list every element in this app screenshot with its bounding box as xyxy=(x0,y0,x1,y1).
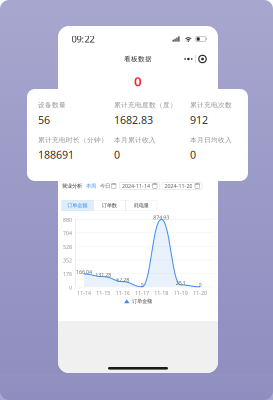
button[interactable]: 耗电量 xyxy=(126,200,157,211)
button[interactable]: 今日 xyxy=(100,183,116,189)
staticText: 耗电量 xyxy=(134,202,149,209)
staticText: 看板数据 xyxy=(124,55,152,63)
staticText: 累计充电度数（度） xyxy=(114,101,177,109)
staticText: 131.28 xyxy=(95,271,111,278)
button[interactable]: Close mini program xyxy=(196,53,209,65)
staticText: 11-17 xyxy=(135,289,149,296)
staticText: 874.93 xyxy=(153,214,169,221)
staticText: 56 xyxy=(38,113,50,127)
staticText: 累计充电次数 xyxy=(190,101,232,109)
staticText: 订单金额 xyxy=(67,202,87,209)
button[interactable]: 本周 xyxy=(86,183,96,189)
staticText: 11-19 xyxy=(174,289,188,296)
staticText: 本月累计收入 xyxy=(114,136,156,144)
staticText: 本月日均收入 xyxy=(190,136,232,144)
staticText: 0 xyxy=(198,281,201,288)
staticText: 11-20 xyxy=(193,289,207,296)
staticText: 0 xyxy=(114,147,120,162)
staticText: 1682.83 xyxy=(114,113,153,127)
staticText: 设备数量 xyxy=(38,101,66,109)
staticText: 2024-11-20 xyxy=(164,182,192,190)
staticText: 09:22 xyxy=(71,33,94,45)
button[interactable]: 订单金额 xyxy=(61,200,93,211)
staticText: 订单数 xyxy=(102,202,117,209)
staticText: 0 xyxy=(140,281,143,288)
button[interactable]: More xyxy=(181,53,195,65)
staticText: 0 xyxy=(134,72,142,90)
staticText: 2024-11-14 xyxy=(122,182,150,190)
staticText: 67.28 xyxy=(116,276,129,283)
staticText: 352 xyxy=(63,257,72,264)
staticText: 528 xyxy=(63,243,72,250)
button[interactable]: 订单数 xyxy=(93,200,125,211)
staticText: 11-18 xyxy=(154,289,168,296)
staticText: 188691 xyxy=(38,147,74,162)
button[interactable]: 2024-11-14 xyxy=(119,182,159,189)
staticText: 166.04 xyxy=(76,268,92,275)
staticText: 营业分析 xyxy=(62,183,82,189)
staticText: 今日 xyxy=(100,183,110,189)
staticText: 11-14 xyxy=(77,289,91,296)
button[interactable]: 2024-11-20 xyxy=(162,182,202,189)
staticText: 11-16 xyxy=(116,289,130,296)
staticText: 0 xyxy=(190,147,196,162)
staticText: 0 xyxy=(69,284,72,291)
staticText: 累计充电时长（分钟） xyxy=(38,136,108,144)
staticText: 912 xyxy=(190,113,208,127)
staticText: 订单金额 xyxy=(132,298,152,305)
staticText: 880 xyxy=(63,216,72,223)
staticText: 704 xyxy=(63,230,72,237)
staticText: 本周 xyxy=(86,183,96,189)
staticText: 11-15 xyxy=(96,289,110,296)
staticText: 176 xyxy=(63,270,72,277)
staticText: 25.1 xyxy=(176,279,186,286)
